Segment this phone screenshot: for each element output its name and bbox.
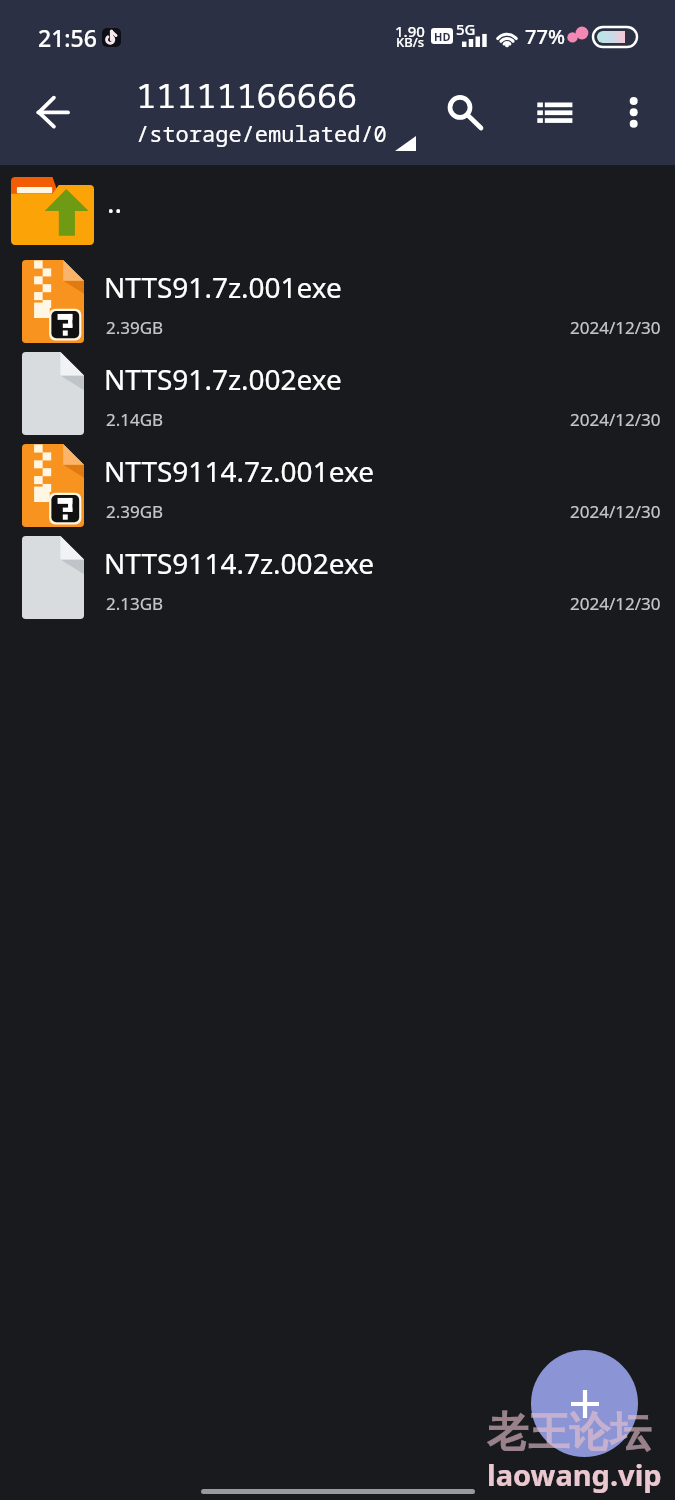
staticText: 2024/12/30 bbox=[570, 316, 661, 339]
button[interactable]: NTTS9114.7z.001exe bbox=[0, 439, 675, 531]
staticText: .. bbox=[107, 183, 123, 221]
staticText: 21:56 bbox=[38, 22, 97, 53]
staticText: 2024/12/30 bbox=[570, 408, 661, 431]
staticText: NTTS9114.7z.001exe bbox=[104, 452, 374, 490]
staticText: 77% bbox=[525, 23, 565, 50]
button[interactable]: Search bbox=[427, 74, 493, 140]
staticText: 2.13GB bbox=[106, 592, 164, 615]
button[interactable]: Back bbox=[20, 79, 86, 145]
button[interactable]: NTTS91.7z.001exe bbox=[0, 255, 675, 347]
button[interactable]: .. bbox=[0, 165, 675, 257]
staticText: 2024/12/30 bbox=[570, 500, 661, 523]
staticText: 11111166666 bbox=[136, 72, 358, 118]
button[interactable]: NTTS91.7z.002exe bbox=[0, 347, 675, 439]
staticText: KB/s bbox=[396, 33, 425, 51]
staticText: 2.39GB bbox=[106, 500, 164, 523]
staticText: NTTS91.7z.002exe bbox=[104, 360, 342, 398]
button[interactable]: More options bbox=[604, 74, 664, 134]
staticText: 5G bbox=[456, 19, 476, 39]
button[interactable]: View mode bbox=[522, 74, 588, 140]
staticText: 2.14GB bbox=[106, 408, 164, 431]
staticText: NTTS9114.7z.002exe bbox=[104, 544, 374, 582]
staticText: HD bbox=[434, 29, 451, 44]
staticText: 2.39GB bbox=[106, 316, 164, 339]
staticText: /storage/emulated/0 bbox=[136, 118, 387, 148]
staticText: 老王论坛 bbox=[487, 1407, 651, 1459]
button[interactable]: NTTS9114.7z.002exe bbox=[0, 531, 675, 623]
staticText: laowang.vip bbox=[487, 1455, 662, 1494]
staticText: 1.90 bbox=[395, 21, 425, 41]
staticText: 2024/12/30 bbox=[570, 592, 661, 615]
staticText: NTTS91.7z.001exe bbox=[104, 268, 342, 306]
button[interactable]: Add bbox=[531, 1350, 638, 1457]
